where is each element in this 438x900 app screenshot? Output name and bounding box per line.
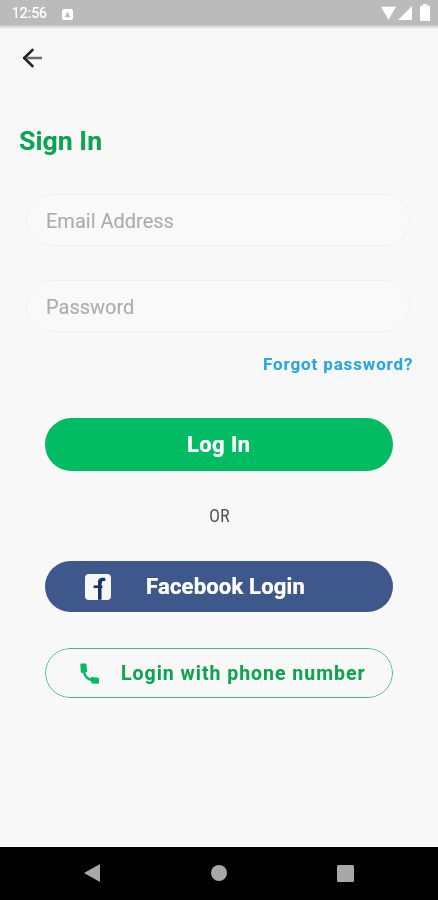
staticText: Login with phone number [121,662,366,685]
button[interactable]: Password [26,280,410,332]
button[interactable]: Facebook Login [45,561,393,612]
button[interactable]: Back [8,34,56,82]
button[interactable]: Forgot password? [240,349,412,379]
staticText: Password [46,295,135,318]
staticText: Forgot password? [263,354,414,374]
staticText: Facebook Login [146,574,306,600]
button[interactable]: Login with phone number [45,648,393,698]
staticText: 12:56 [12,5,47,21]
button[interactable]: Home [195,849,243,897]
staticText: Email Address [46,209,174,232]
button[interactable]: Back [68,849,116,897]
staticText: Log In [187,432,251,458]
button[interactable]: Email Address [26,194,410,246]
button[interactable]: Recent apps [321,849,369,897]
staticText: Sign In [19,125,103,156]
staticText: OR [209,505,230,526]
button[interactable]: Log In [45,418,393,471]
